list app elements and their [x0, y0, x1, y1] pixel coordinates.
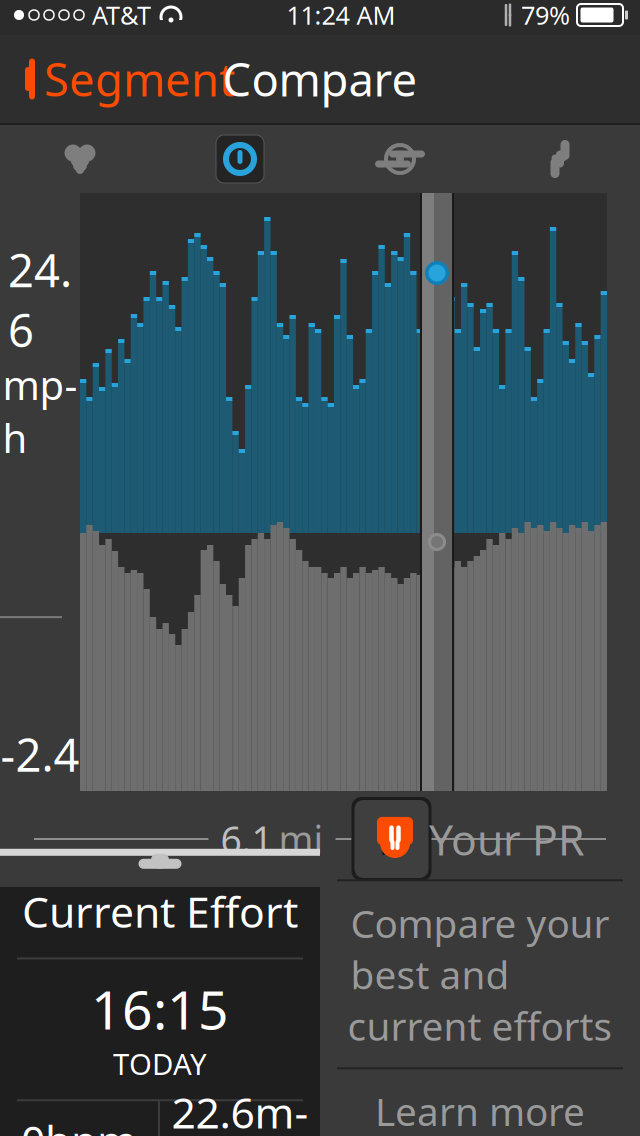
staticText: mi — [278, 814, 323, 864]
staticText: 11:24 AM — [286, 0, 395, 32]
button[interactable]: Current Effort — [0, 887, 320, 1136]
staticText: Compare — [222, 49, 417, 109]
staticText: 24.6 — [8, 239, 72, 360]
staticText: 6.1 — [220, 814, 272, 864]
staticText: 16:15 — [91, 973, 229, 1044]
staticText: 22.6mph — [171, 1084, 308, 1136]
staticText: 79% — [521, 0, 570, 32]
staticText: -2.4% — [0, 724, 79, 844]
button[interactable]: Your PR — [320, 887, 640, 1136]
button[interactable]: Segment — [0, 39, 235, 119]
staticText: Segment — [44, 49, 235, 109]
staticText: Learn more about — [375, 1085, 585, 1136]
staticText: Compare your best and — [350, 897, 609, 1000]
staticText: mph — [2, 358, 77, 464]
staticText: Current Effort — [22, 883, 298, 939]
staticText: TODAY — [113, 1044, 207, 1083]
staticText: 0bpm — [21, 1112, 137, 1136]
staticText: AT&T — [92, 0, 151, 32]
staticText: current efforts — [347, 1000, 612, 1051]
staticText: Your PR — [429, 811, 585, 867]
button[interactable]: Heart rate — [0, 125, 160, 193]
button[interactable]: Scrub position — [351, 797, 431, 881]
button[interactable]: Speed — [160, 125, 320, 193]
button[interactable]: Cadence — [320, 125, 480, 193]
button[interactable]: Power — [480, 125, 640, 193]
